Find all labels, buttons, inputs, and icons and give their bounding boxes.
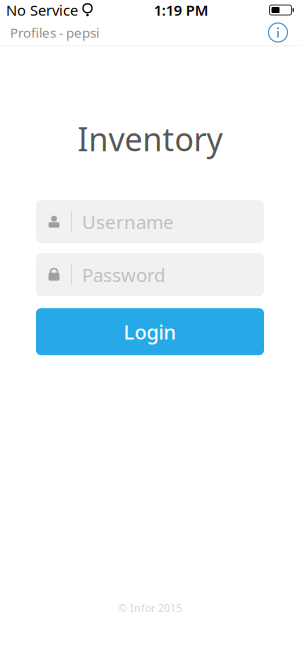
button[interactable]: Profiles - pepsi — [0, 18, 99, 47]
staticText: Username — [82, 209, 174, 234]
staticText: Profiles - pepsi — [10, 24, 99, 41]
staticText: Inventory — [77, 118, 222, 160]
staticText: No Service — [6, 0, 78, 20]
button[interactable]: Password — [36, 253, 264, 296]
staticText: Login — [123, 318, 176, 345]
button[interactable]: Login — [36, 308, 264, 355]
button[interactable]: Information — [268, 18, 300, 46]
staticText: Password — [82, 262, 165, 287]
button[interactable]: Username — [36, 200, 264, 243]
staticText: 1:19 PM — [154, 0, 209, 20]
staticText: © Infor 2015 — [118, 601, 182, 615]
